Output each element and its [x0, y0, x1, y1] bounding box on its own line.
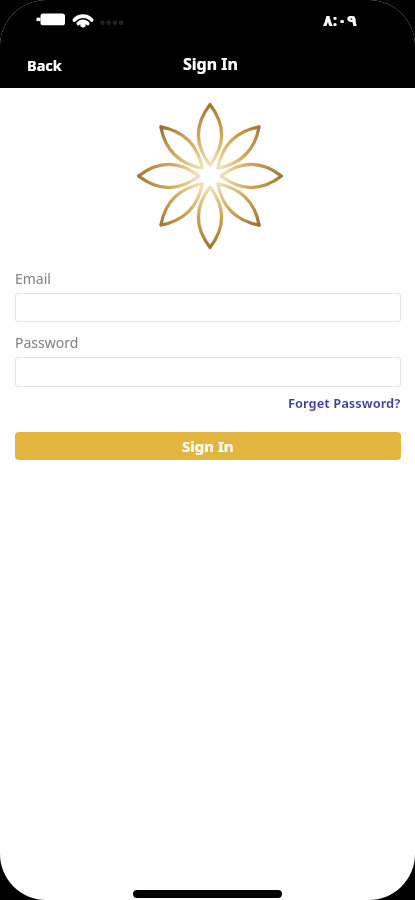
- staticText: Email: [15, 269, 51, 288]
- staticText: Sign In: [183, 53, 238, 75]
- button[interactable]: Back: [19, 49, 70, 81]
- staticText: Back: [27, 55, 62, 75]
- staticText: Sign In: [182, 436, 234, 456]
- button[interactable]: Sign In: [15, 432, 401, 460]
- staticText: ۸:۰۹: [323, 9, 357, 31]
- button[interactable]: [15, 293, 401, 322]
- button[interactable]: [15, 357, 401, 387]
- button[interactable]: Forget Password?: [288, 394, 401, 411]
- staticText: Forget Password?: [288, 394, 401, 411]
- staticText: Password: [15, 333, 79, 352]
